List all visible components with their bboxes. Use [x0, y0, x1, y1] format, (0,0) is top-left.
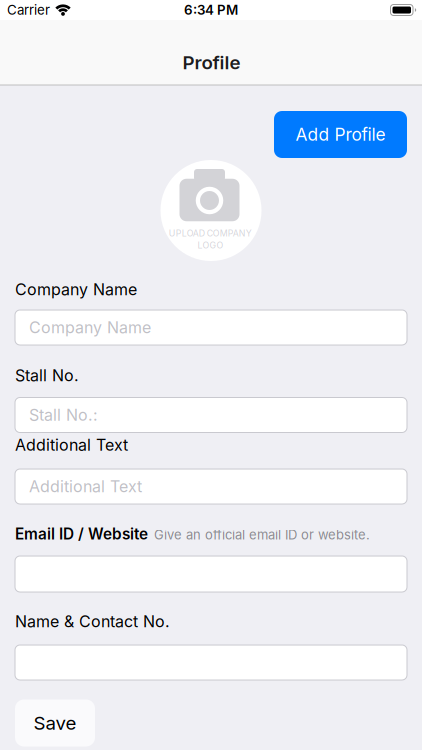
staticText: Add Profile — [295, 124, 385, 145]
staticText: Company Name — [29, 318, 151, 337]
staticText: Company Name — [15, 280, 137, 299]
button[interactable]: Additional Text — [15, 469, 407, 504]
staticText: Additional Text — [15, 436, 128, 454]
staticText: Additional Text — [29, 477, 142, 496]
staticText: Stall No.: — [29, 406, 98, 424]
staticText: Email ID / Website — [15, 525, 148, 543]
button[interactable]: Upload company logo — [160, 160, 261, 261]
staticText: 6:34 PM — [184, 2, 238, 18]
staticText: UPLOAD COMPANY — [169, 228, 252, 239]
staticText: Save — [33, 712, 76, 734]
button[interactable] — [15, 645, 407, 680]
staticText: Carrier — [7, 2, 50, 18]
staticText: Profile — [182, 51, 240, 73]
button[interactable] — [15, 556, 407, 592]
staticText: Give an official email ID or website. — [154, 527, 370, 543]
button[interactable]: Save — [15, 699, 95, 746]
staticText: LOGO — [197, 240, 223, 251]
staticText: Name & Contact No. — [15, 612, 170, 631]
button[interactable]: Add Profile — [274, 111, 407, 158]
button[interactable]: Stall No.: — [15, 397, 407, 432]
button[interactable]: Company Name — [15, 310, 407, 345]
staticText: Stall No. — [15, 366, 79, 385]
